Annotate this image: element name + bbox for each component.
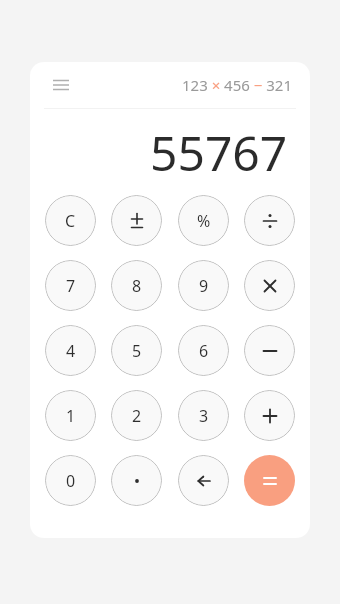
button[interactable]: 9 (178, 260, 229, 311)
button[interactable]: 6 (178, 325, 229, 376)
button[interactable]: Divide (244, 195, 295, 246)
staticText: 7 (66, 275, 76, 297)
button[interactable]: 5 (111, 325, 162, 376)
staticText: 8 (132, 275, 142, 297)
button[interactable]: Add (244, 390, 295, 441)
button[interactable]: 1 (45, 390, 96, 441)
staticText: 0 (66, 470, 76, 492)
button[interactable]: C (45, 195, 96, 246)
staticText: C (65, 210, 76, 232)
button[interactable]: Decimal point (111, 455, 162, 506)
button[interactable]: Menu (48, 72, 74, 98)
button[interactable]: 7 (45, 260, 96, 311)
button[interactable]: 0 (45, 455, 96, 506)
button[interactable]: Equals (244, 455, 295, 506)
button[interactable]: Subtract (244, 325, 295, 376)
button[interactable]: 8 (111, 260, 162, 311)
staticText: 3 (199, 405, 209, 427)
button[interactable]: % (178, 195, 229, 246)
button[interactable]: Backspace (178, 455, 229, 506)
staticText: 2 (132, 405, 142, 427)
button[interactable]: 3 (178, 390, 229, 441)
staticText: 5 (132, 340, 142, 362)
button[interactable]: 2 (111, 390, 162, 441)
button[interactable]: 4 (45, 325, 96, 376)
staticText: 9 (199, 275, 209, 297)
staticText: 1 (66, 405, 76, 427)
staticText: 6 (199, 340, 209, 362)
staticText: 55767 (150, 120, 288, 185)
staticText: 4 (66, 340, 76, 362)
staticText: 123 × 456 − 321 (182, 75, 292, 95)
staticText: % (197, 210, 211, 232)
button[interactable]: Plus minus (111, 195, 162, 246)
button[interactable]: Multiply (244, 260, 295, 311)
